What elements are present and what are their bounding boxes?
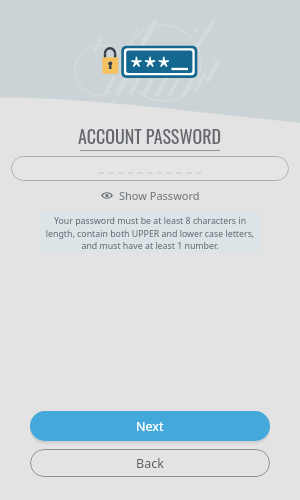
staticText: Show Password (119, 188, 200, 203)
button[interactable]: Next (30, 411, 270, 441)
staticText: Next (136, 418, 164, 435)
staticText: Your password must be at least 8 charact… (45, 215, 255, 251)
staticText: Back (136, 455, 164, 472)
other: Show Password (101, 192, 113, 199)
button[interactable] (11, 156, 289, 181)
staticText: ACCOUNT PASSWORD (78, 123, 222, 150)
button[interactable]: Back (30, 449, 270, 477)
button[interactable]: Show Password (0, 188, 300, 203)
